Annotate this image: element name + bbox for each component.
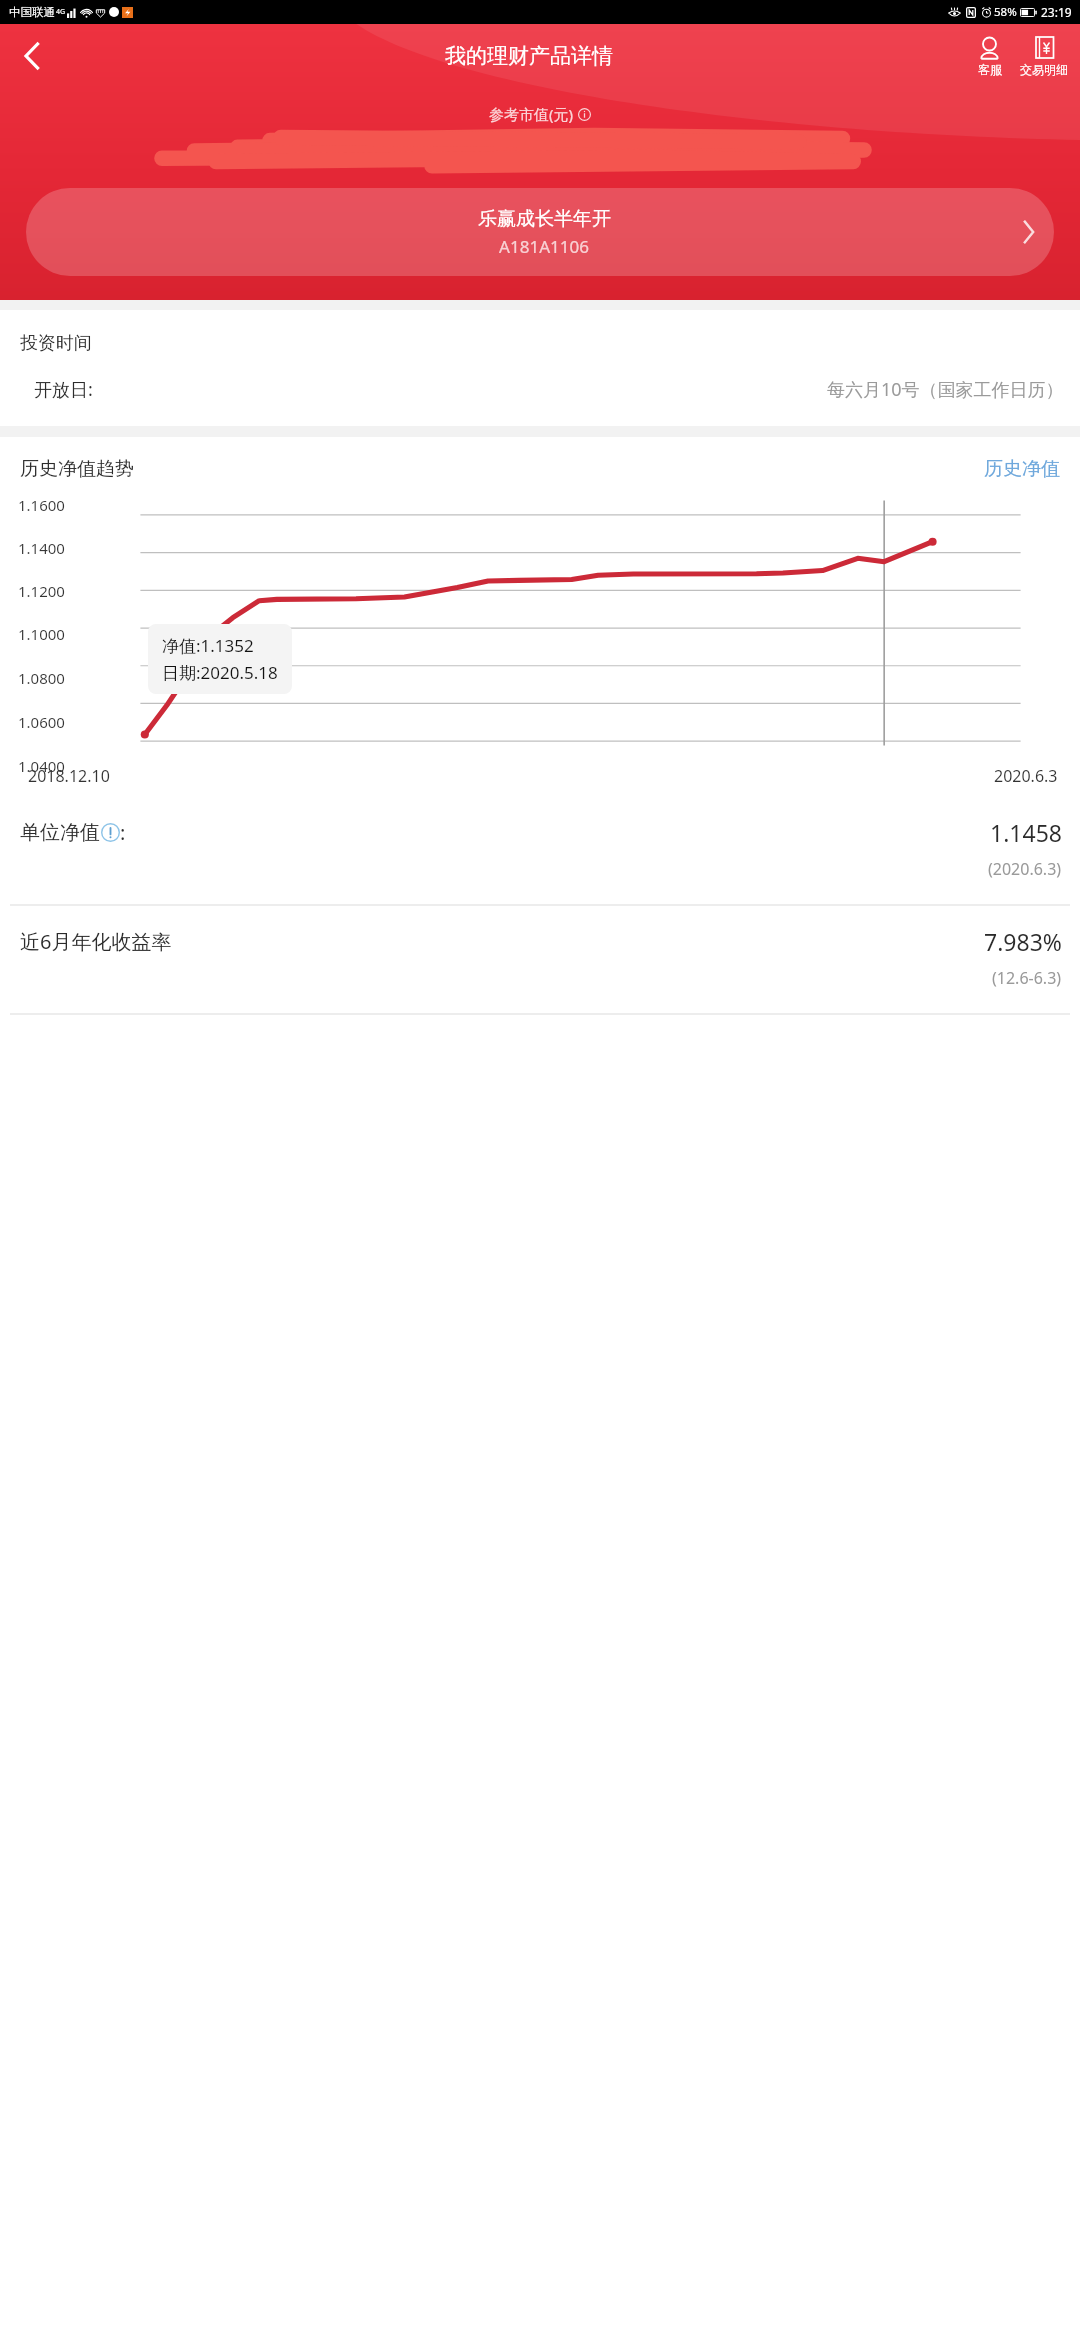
- staticText: :: [120, 819, 126, 846]
- button[interactable]: 乐赢成长半年开: [26, 188, 1054, 276]
- staticText: 每六月10号（国家工作日历）: [827, 377, 1064, 402]
- staticText: 1.0800: [18, 668, 65, 688]
- staticText: 交易明细: [1020, 62, 1068, 77]
- button[interactable]: 交易明细: [1018, 33, 1070, 79]
- button[interactable]: 近6月年化收益率: [0, 906, 1080, 1013]
- button[interactable]: 单位净值: [0, 797, 1080, 904]
- staticText: 净值:1.1352: [162, 634, 254, 657]
- staticText: 1.1000: [18, 624, 65, 644]
- staticText: 我的理财产品详情: [445, 43, 613, 69]
- staticText: 2018.12.10: [28, 765, 110, 787]
- staticText: 客服: [978, 62, 1002, 77]
- staticText: 4G: [56, 7, 66, 17]
- staticText: 投资时间: [20, 332, 92, 355]
- staticText: 1.0400: [18, 756, 65, 776]
- staticText: (2020.6.3): [988, 858, 1062, 880]
- staticText: 1.12 1.1: [469, 126, 611, 175]
- staticText: 1.1200: [18, 581, 65, 601]
- staticText: 乐赢成长半年开: [478, 207, 611, 231]
- staticText: 2020.6.3: [994, 765, 1058, 787]
- staticText: 1.0600: [18, 712, 65, 732]
- staticText: 58%: [994, 4, 1017, 20]
- staticText: A181A1106: [499, 235, 589, 258]
- staticText: 23:19: [1041, 4, 1072, 20]
- staticText: 1.1458: [990, 817, 1062, 848]
- staticText: 1.1400: [18, 538, 65, 558]
- button[interactable]: 历史净值: [982, 455, 1062, 483]
- staticText: 近6月年化收益率: [20, 928, 172, 955]
- staticText: 历史净值: [984, 457, 1060, 481]
- button[interactable]: 客服: [975, 33, 1004, 79]
- staticText: 1.1600: [18, 495, 65, 515]
- staticText: 参考市值(元): [489, 104, 574, 124]
- staticText: (12.6-6.3): [992, 967, 1062, 989]
- staticText: 单位净值: [20, 820, 100, 845]
- staticText: 开放日:: [34, 377, 93, 402]
- staticText: 中国联通: [9, 5, 55, 19]
- staticText: 7.983%: [984, 926, 1062, 957]
- button[interactable]: 返回: [6, 30, 58, 82]
- staticText: 日期:2020.5.18: [162, 661, 278, 684]
- staticText: 历史净值趋势: [20, 457, 134, 481]
